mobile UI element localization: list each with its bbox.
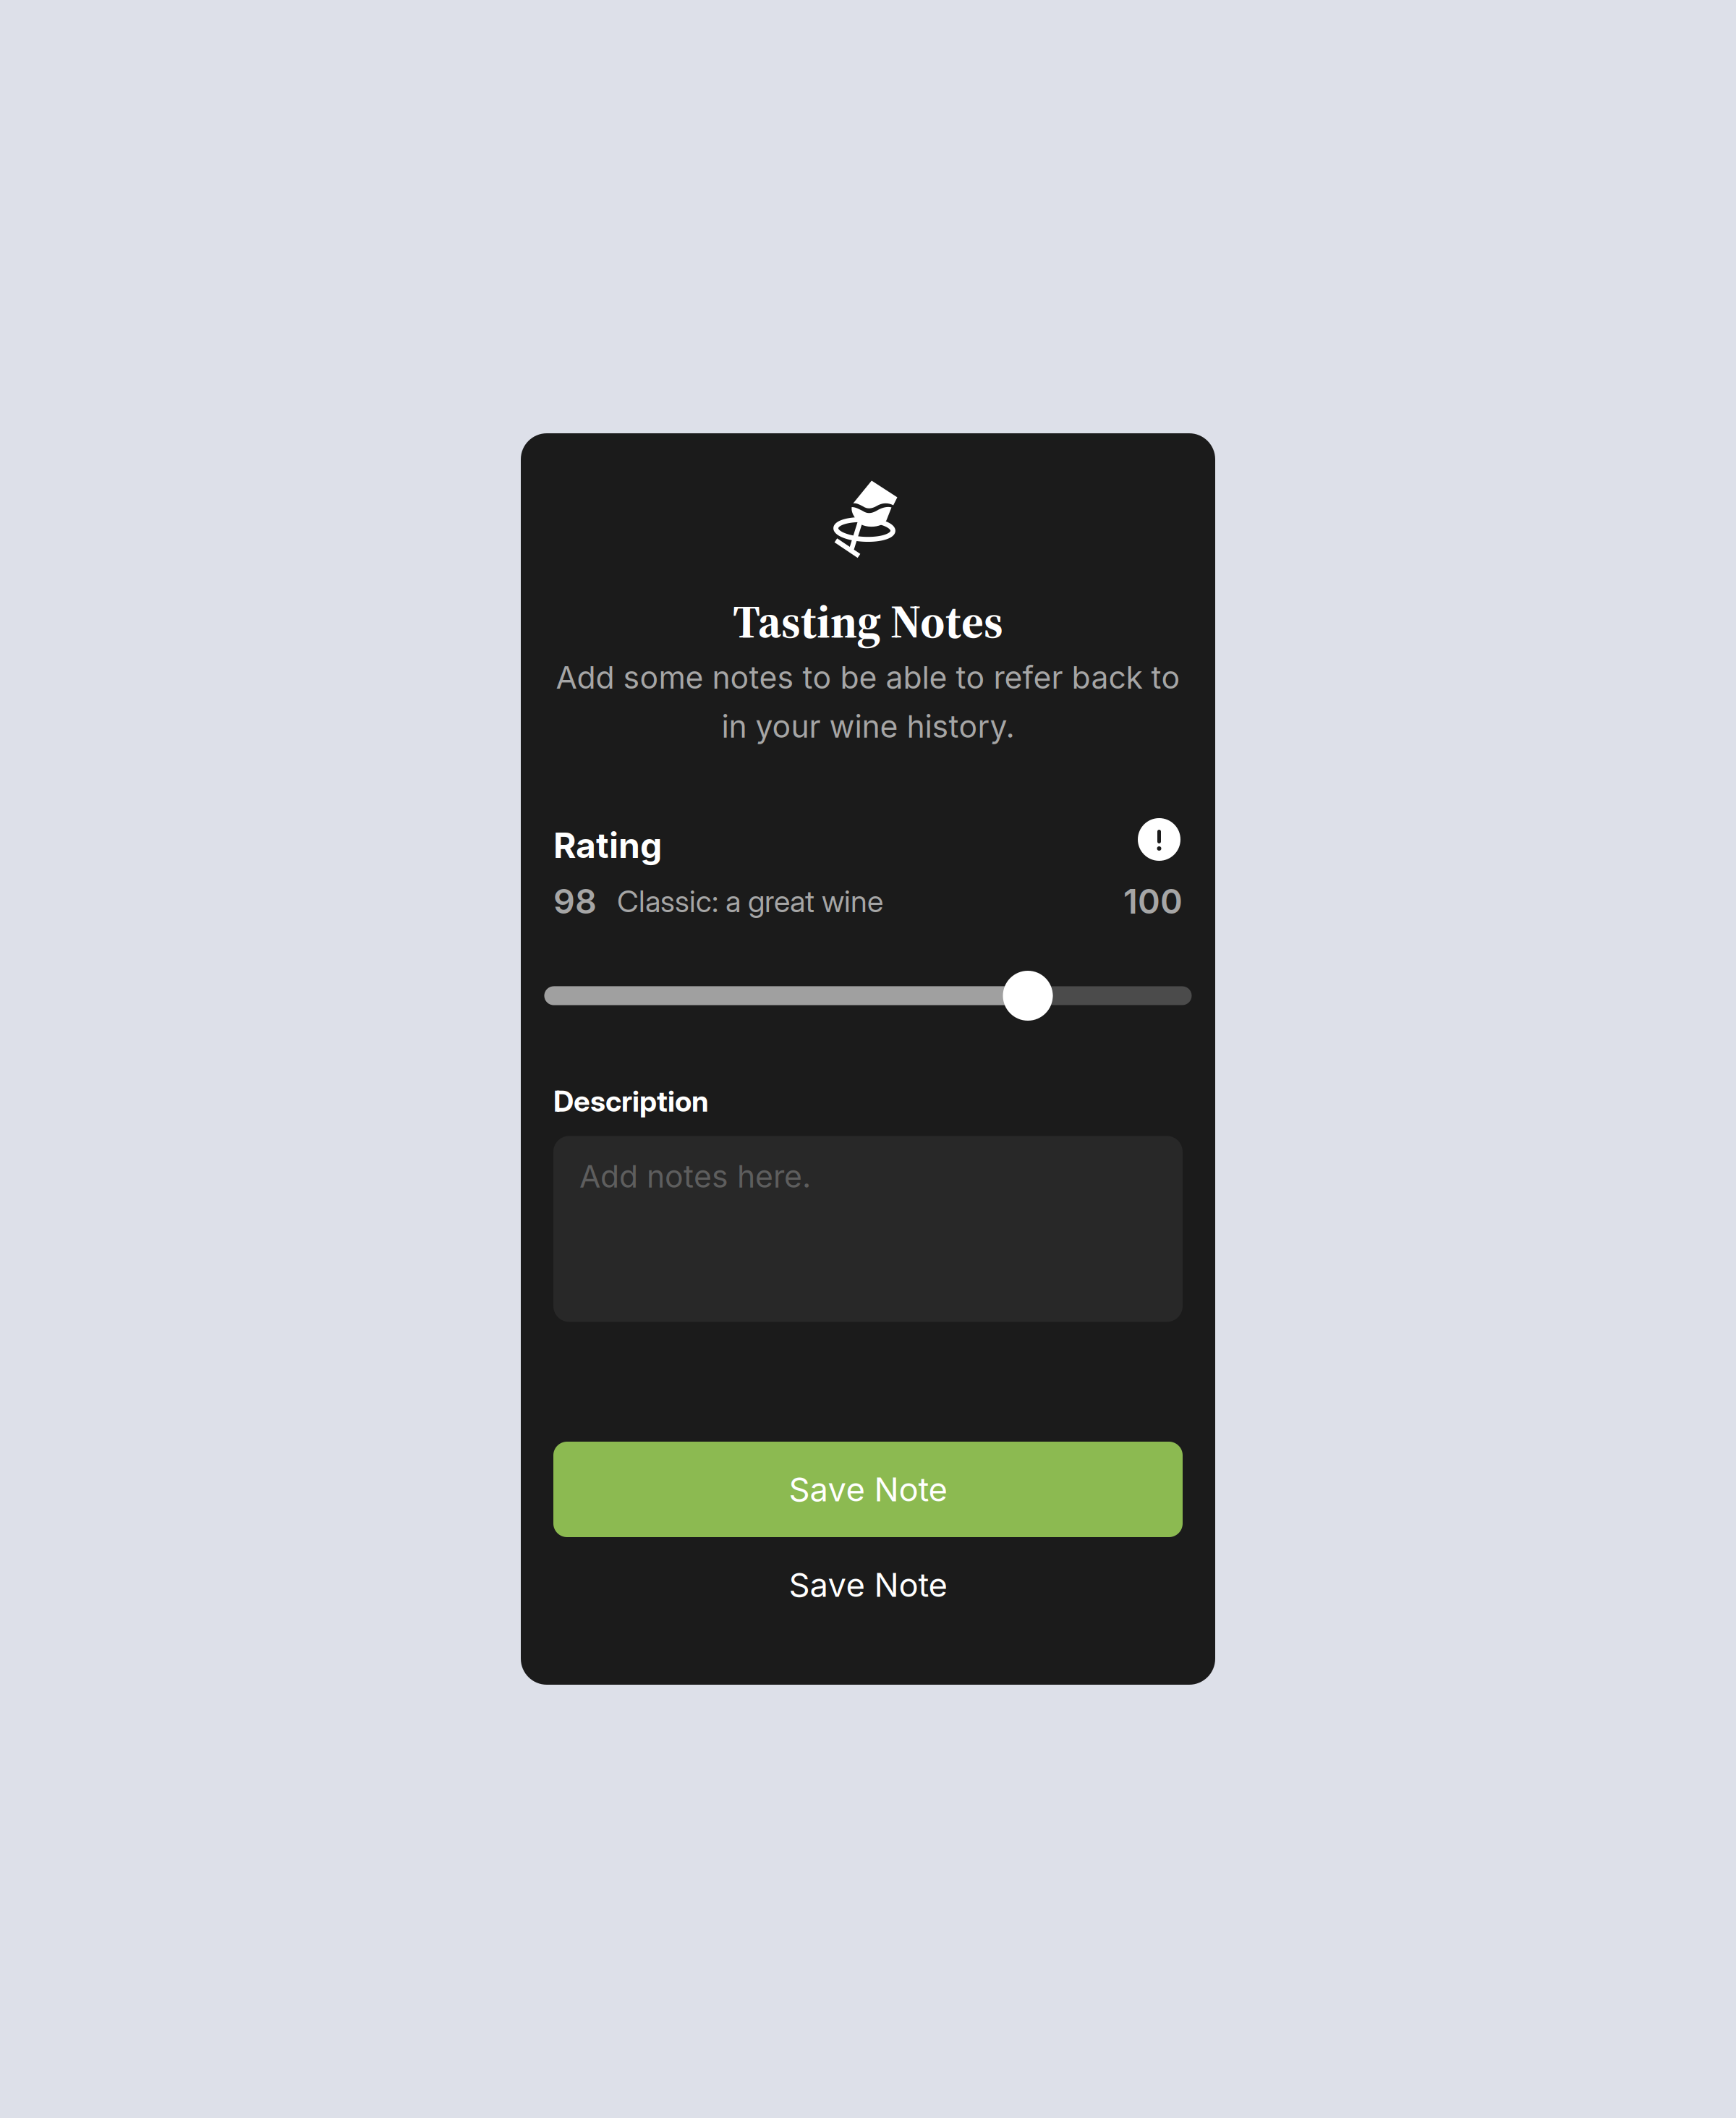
staticText: 98 xyxy=(553,881,597,922)
staticText: in your wine history. xyxy=(722,708,1014,745)
staticText: Description xyxy=(553,1084,709,1119)
button[interactable]: Rating information xyxy=(1140,824,1183,867)
button[interactable]: Save Note xyxy=(553,1554,1183,1616)
staticText: Add notes here. xyxy=(579,1158,811,1195)
staticText: Rating xyxy=(553,824,662,866)
staticText: 100 xyxy=(1123,881,1183,922)
button[interactable]: Save Note xyxy=(553,1442,1183,1537)
staticText: Save Note xyxy=(789,1470,947,1509)
staticText: Save Note xyxy=(789,1565,947,1605)
button[interactable]: Add notes here. xyxy=(553,1136,1183,1322)
staticText: Add some notes to be able to refer back … xyxy=(556,659,1180,696)
staticText: Classic: a great wine xyxy=(617,883,883,919)
staticText: Tasting Notes xyxy=(733,590,1003,653)
button[interactable]: Rating slider, 98 out of 100 xyxy=(544,971,1192,1021)
